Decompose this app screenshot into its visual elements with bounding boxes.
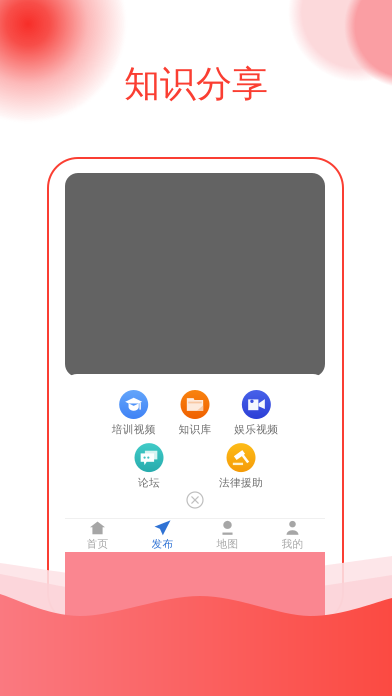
- staticText: 论坛: [138, 476, 160, 489]
- staticText: 我的: [281, 537, 303, 550]
- button[interactable]: 首页: [65, 519, 130, 552]
- button[interactable]: 论坛: [103, 443, 195, 489]
- staticText: 首页: [86, 537, 108, 550]
- button[interactable]: 培训视频: [103, 390, 164, 436]
- staticText: 发布: [151, 537, 173, 550]
- staticText: 培训视频: [112, 423, 156, 436]
- staticText: 地图: [216, 537, 238, 550]
- button[interactable]: 我的: [260, 519, 325, 552]
- button[interactable]: 关闭: [181, 486, 209, 514]
- button[interactable]: 娱乐视频: [226, 390, 287, 436]
- button[interactable]: 发布: [130, 519, 195, 552]
- staticText: 知识库: [178, 423, 211, 436]
- button[interactable]: 知识库: [164, 390, 226, 436]
- staticText: 知识分享: [124, 62, 268, 106]
- staticText: 法律援助: [219, 476, 263, 489]
- button[interactable]: 法律援助: [195, 443, 287, 489]
- staticText: 娱乐视频: [234, 423, 278, 436]
- button[interactable]: 地图: [195, 519, 260, 552]
